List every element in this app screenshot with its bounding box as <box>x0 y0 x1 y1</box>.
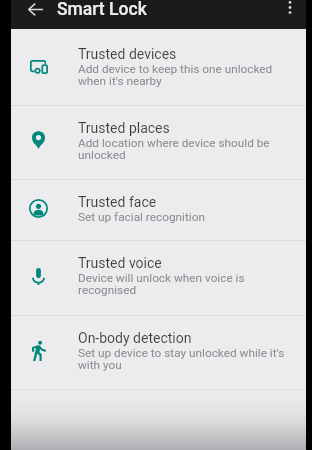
button[interactable]: More options <box>276 0 303 21</box>
staticText: Trusted places <box>78 120 170 136</box>
staticText: On-body detection <box>78 330 192 346</box>
staticText: Set up device to stay unlocked while it'… <box>78 346 297 372</box>
staticText: Set up facial recognition <box>78 210 205 224</box>
staticText: Add device to keep this one unlocked whe… <box>78 62 297 88</box>
button[interactable]: Trusted voice <box>11 241 306 315</box>
button[interactable]: Trusted places <box>11 106 306 179</box>
staticText: Trusted face <box>78 194 157 210</box>
button[interactable]: On-body detection <box>11 316 306 389</box>
staticText: Smart Lock <box>57 0 147 20</box>
staticText: Trusted voice <box>78 255 162 271</box>
button[interactable]: Navigate up <box>21 0 49 23</box>
staticText: Add location where device should be unlo… <box>78 136 297 162</box>
staticText: Trusted devices <box>78 46 177 62</box>
button[interactable]: Trusted devices <box>11 29 306 105</box>
button[interactable]: Trusted face <box>11 180 306 240</box>
staticText: Device will unlock when voice is recogni… <box>78 271 297 297</box>
